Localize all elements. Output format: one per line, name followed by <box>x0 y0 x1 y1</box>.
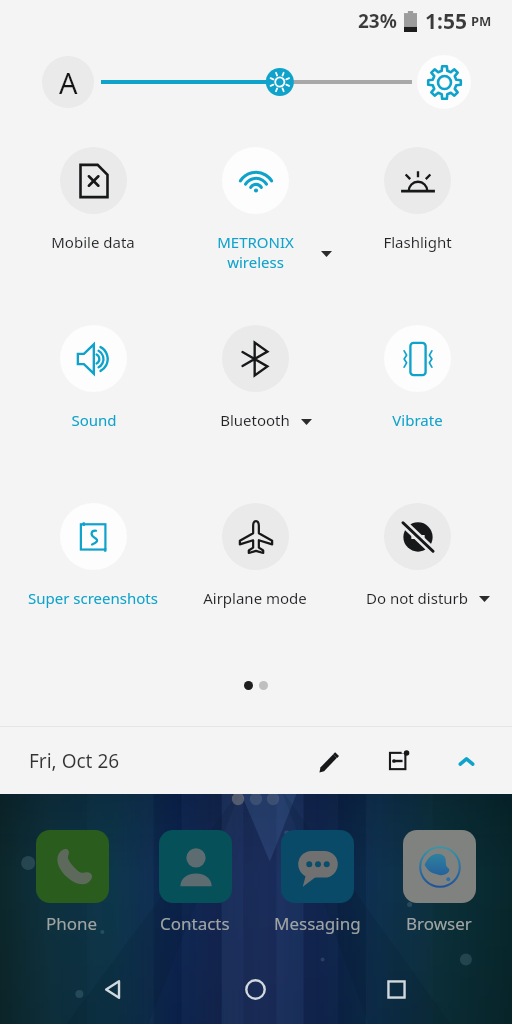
staticText: Sound <box>71 410 117 430</box>
button[interactable]: Super screenshots <box>8 503 178 608</box>
button[interactable]: Airplane mode <box>170 503 340 608</box>
button[interactable]: Messaging <box>267 830 367 935</box>
staticText: PM <box>471 12 492 30</box>
staticText: METRONIX wireless <box>217 232 294 272</box>
staticText: Do not disturb <box>366 588 468 608</box>
staticText: Super screenshots <box>28 588 158 608</box>
staticText: Phone <box>46 912 98 935</box>
button[interactable]: Collapse <box>444 739 488 783</box>
button[interactable]: Settings <box>417 55 471 109</box>
button[interactable]: Back <box>91 967 135 1011</box>
button[interactable]: Browser <box>389 830 489 935</box>
staticText: Fri, Oct 26 <box>29 748 120 774</box>
staticText: Mobile data <box>51 232 135 252</box>
staticText: Messaging <box>274 912 361 935</box>
staticText: Airplane mode <box>203 588 307 608</box>
button[interactable]: Bluetooth <box>170 325 340 430</box>
staticText: 23% <box>358 8 397 34</box>
button[interactable]: Mobile data <box>8 147 178 252</box>
button[interactable]: Phone <box>22 830 122 935</box>
button[interactable]: METRONIX wireless <box>170 147 340 272</box>
staticText: Contacts <box>160 912 230 935</box>
button[interactable]: Home <box>233 967 277 1011</box>
button[interactable]: Edit <box>308 739 352 783</box>
button[interactable]: Contacts <box>145 830 245 935</box>
staticText: A <box>59 63 78 102</box>
button[interactable]: Recents <box>374 967 418 1011</box>
button[interactable]: Flashlight <box>332 147 502 252</box>
button[interactable]: Auto brightness <box>42 56 94 108</box>
staticText: Browser <box>406 912 472 935</box>
button[interactable]: Sound <box>8 325 178 430</box>
button[interactable]: Do not disturb <box>332 503 502 608</box>
staticText: Flashlight <box>383 232 452 252</box>
staticText: 1:55 <box>425 7 467 36</box>
button[interactable]: Vibrate <box>332 325 502 430</box>
staticText: Vibrate <box>392 410 443 430</box>
staticText: Bluetooth <box>220 410 290 430</box>
button[interactable]: Manage notifications <box>377 739 421 783</box>
